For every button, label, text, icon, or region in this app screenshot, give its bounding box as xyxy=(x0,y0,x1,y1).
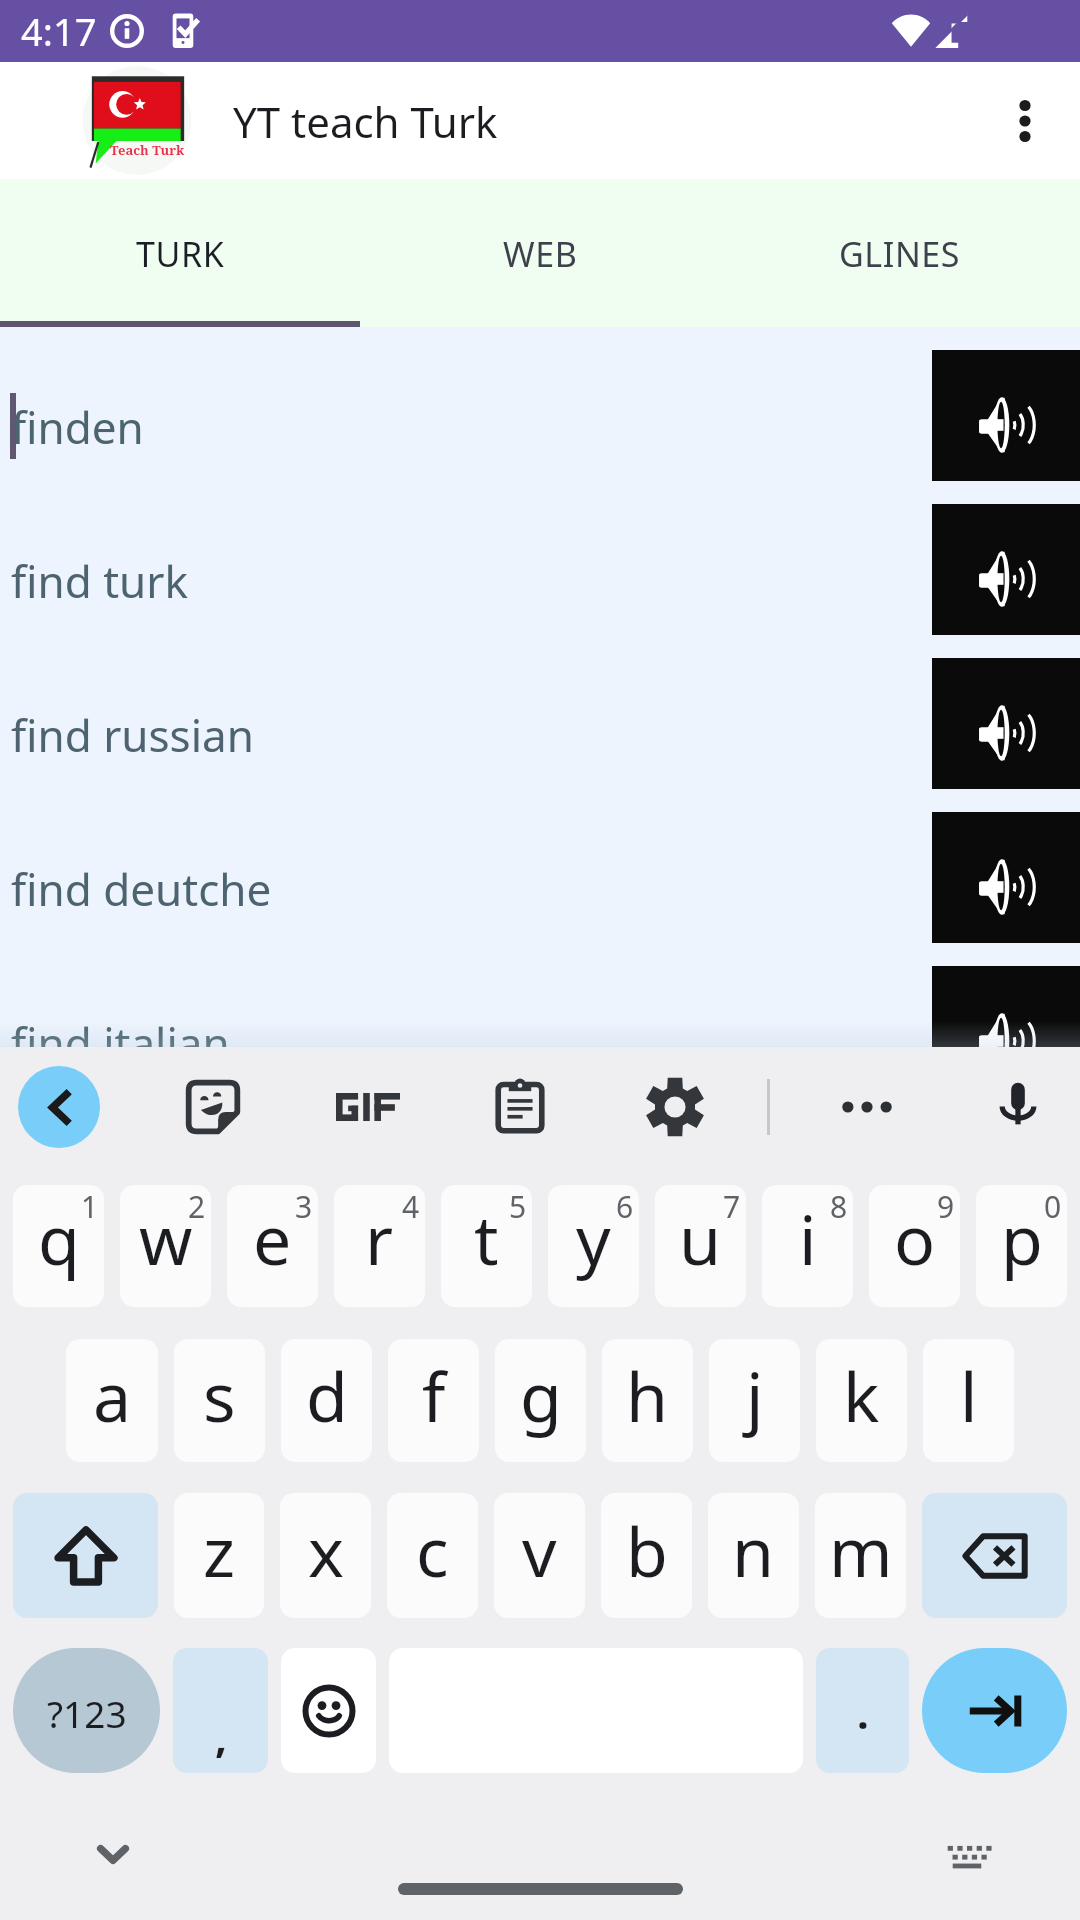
button[interactable]: finden xyxy=(0,327,1080,481)
button[interactable]: Clipboard xyxy=(487,1074,553,1140)
button[interactable]: GIF xyxy=(330,1069,406,1145)
button[interactable]: x xyxy=(280,1493,371,1618)
button[interactable]: d xyxy=(281,1339,372,1462)
staticText: a xyxy=(93,1349,132,1442)
button[interactable]: z xyxy=(174,1493,264,1618)
button[interactable]: Stickers xyxy=(181,1075,245,1139)
button[interactable]: e xyxy=(227,1185,318,1307)
button[interactable]: find russian xyxy=(0,635,1080,789)
staticText: v xyxy=(522,1504,557,1597)
staticText: , xyxy=(215,1708,227,1765)
button[interactable]: u xyxy=(655,1185,746,1307)
button[interactable]: . xyxy=(816,1648,909,1773)
staticText: 1 xyxy=(81,1186,99,1227)
staticText: find russian xyxy=(11,705,254,765)
button[interactable]: m xyxy=(815,1493,906,1618)
staticText: 7 xyxy=(723,1186,741,1227)
button[interactable]: WEB xyxy=(360,179,720,327)
staticText: 2 xyxy=(188,1186,206,1227)
button[interactable]: k xyxy=(816,1339,907,1462)
staticText: f xyxy=(422,1349,446,1442)
staticText: j xyxy=(746,1349,764,1442)
button[interactable]: , xyxy=(173,1648,268,1773)
button[interactable]: v xyxy=(494,1493,585,1618)
staticText: t xyxy=(474,1192,499,1285)
staticText: 6 xyxy=(616,1186,634,1227)
button[interactable]: o xyxy=(869,1185,960,1307)
staticText: 3 xyxy=(295,1186,313,1227)
button[interactable]: b xyxy=(601,1493,692,1618)
button[interactable]: s xyxy=(174,1339,265,1462)
staticText: TURK xyxy=(136,231,225,277)
button[interactable]: Speak xyxy=(932,658,1080,789)
staticText: l xyxy=(960,1349,978,1442)
button[interactable]: Settings xyxy=(643,1075,707,1139)
button[interactable]: More options xyxy=(976,62,1080,179)
button[interactable]: Change keyboard xyxy=(946,1835,988,1877)
button[interactable]: Back xyxy=(18,1066,100,1148)
button[interactable]: Shift xyxy=(13,1493,158,1618)
button[interactable]: find turk xyxy=(0,481,1080,635)
button[interactable]: w xyxy=(120,1185,211,1307)
button[interactable]: Backspace xyxy=(922,1493,1067,1618)
staticText: k xyxy=(843,1349,880,1442)
staticText: WEB xyxy=(503,231,578,277)
staticText: y xyxy=(576,1192,611,1285)
button[interactable]: Voice input xyxy=(987,1076,1049,1138)
staticText: w xyxy=(139,1192,193,1285)
button[interactable]: p xyxy=(976,1185,1067,1307)
staticText: x xyxy=(308,1504,344,1597)
button[interactable]: g xyxy=(495,1339,586,1462)
staticText: g xyxy=(520,1349,562,1442)
staticText: 4:17 xyxy=(21,5,97,57)
staticText: 5 xyxy=(509,1186,527,1227)
staticText: b xyxy=(626,1504,668,1597)
button[interactable]: Next xyxy=(922,1648,1067,1773)
button[interactable]: i xyxy=(762,1185,853,1307)
staticText: 8 xyxy=(830,1186,848,1227)
staticText: finden xyxy=(11,397,144,457)
button[interactable]: TURK xyxy=(0,179,360,327)
button[interactable]: a xyxy=(66,1339,158,1462)
button[interactable]: Speak xyxy=(932,812,1080,943)
staticText: o xyxy=(894,1192,936,1285)
button[interactable]: find italian xyxy=(0,943,1080,1097)
button[interactable]: c xyxy=(387,1493,478,1618)
staticText: z xyxy=(203,1504,235,1597)
staticText: 0 xyxy=(1044,1186,1062,1227)
staticText: YT teach Turk xyxy=(233,93,498,150)
button[interactable]: n xyxy=(708,1493,799,1618)
button[interactable]: f xyxy=(388,1339,479,1462)
staticText: ?123 xyxy=(47,1688,127,1738)
button[interactable]: ?123 xyxy=(13,1648,160,1773)
staticText: m xyxy=(829,1504,893,1597)
staticText: r xyxy=(365,1192,394,1285)
staticText: d xyxy=(306,1349,348,1442)
staticText: Teach Turk xyxy=(110,141,185,159)
button[interactable]: y xyxy=(548,1185,639,1307)
button[interactable]: Speak xyxy=(932,504,1080,635)
button[interactable]: Hide keyboard xyxy=(99,1838,127,1866)
staticText: GLINES xyxy=(839,231,961,277)
staticText: n xyxy=(732,1504,775,1597)
staticText: i xyxy=(799,1192,817,1285)
button[interactable]: Emoji xyxy=(281,1648,376,1773)
button[interactable]: r xyxy=(334,1185,425,1307)
button[interactable]: Speak xyxy=(932,350,1080,481)
staticText: h xyxy=(626,1349,669,1442)
button[interactable]: More options xyxy=(832,1072,902,1142)
button[interactable]: t xyxy=(441,1185,532,1307)
staticText: . xyxy=(857,1684,869,1741)
button[interactable]: q xyxy=(13,1185,104,1307)
button[interactable]: l xyxy=(923,1339,1014,1462)
button[interactable]: h xyxy=(602,1339,693,1462)
button[interactable]: find deutche xyxy=(0,789,1080,943)
button[interactable]: GLINES xyxy=(720,179,1080,327)
staticText: s xyxy=(203,1349,236,1442)
staticText: 9 xyxy=(937,1186,955,1227)
staticText: q xyxy=(38,1192,80,1285)
button[interactable]: j xyxy=(709,1339,800,1462)
staticText: find deutche xyxy=(11,859,272,919)
button[interactable]: Speak xyxy=(932,966,1080,1097)
